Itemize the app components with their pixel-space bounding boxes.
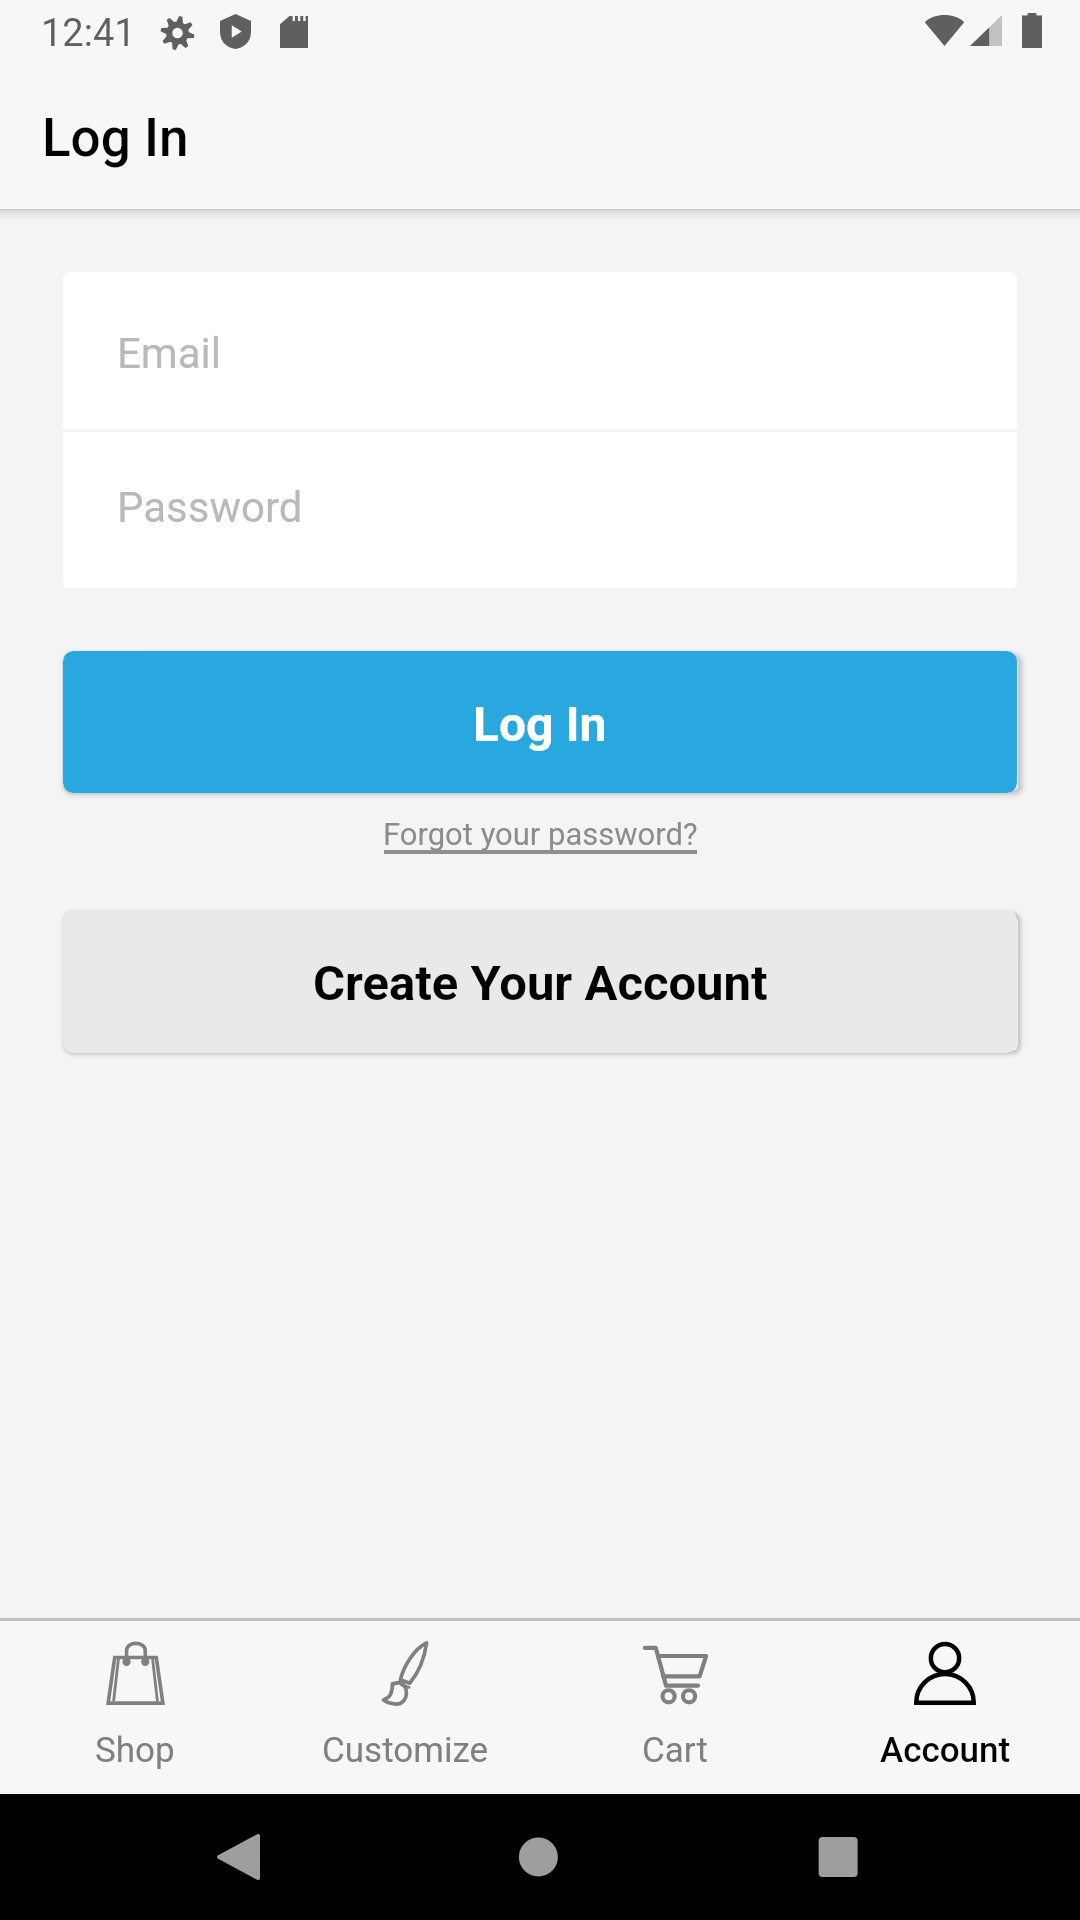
staticText: Log In (473, 696, 607, 752)
button[interactable]: Account (810, 1621, 1080, 1771)
staticText: Password (117, 483, 303, 532)
staticText: Cart (642, 1730, 708, 1771)
staticText: Shop (95, 1730, 175, 1771)
staticText: Log In (42, 107, 189, 169)
button[interactable]: Shop (0, 1621, 270, 1771)
button[interactable]: Email field (63, 272, 1017, 429)
staticText: Email (117, 329, 221, 378)
button[interactable]: Customize (270, 1621, 540, 1771)
staticText: Forgot your password? (383, 816, 698, 852)
button[interactable]: Forgot your password? (373, 812, 708, 860)
button[interactable]: Cart (540, 1621, 810, 1771)
button[interactable]: Password field (63, 432, 1017, 588)
staticText: Customize (322, 1730, 489, 1771)
button[interactable]: Log In (63, 651, 1017, 793)
button[interactable]: Create Your Account (63, 910, 1017, 1053)
staticText: Create Your Account (313, 955, 768, 1012)
staticText: Account (880, 1730, 1011, 1771)
staticText: 12:41 (41, 11, 136, 56)
